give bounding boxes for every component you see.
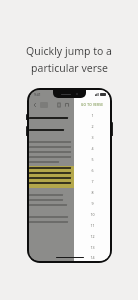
button[interactable]: 1 (74, 110, 110, 121)
staticText: 4 (91, 146, 94, 151)
button[interactable]: 14 (74, 253, 110, 261)
button[interactable]: 9 (74, 198, 110, 209)
staticText: 13 (90, 245, 95, 250)
button[interactable]: 3 (74, 132, 110, 143)
staticText: particular verse (31, 61, 108, 75)
staticText: 10 (90, 212, 95, 217)
staticText: 7 (91, 179, 94, 184)
staticText: 8 (91, 190, 94, 195)
button[interactable]: Bookmark (56, 102, 62, 108)
button[interactable]: Display settings (64, 102, 70, 108)
button[interactable]: 13 (74, 242, 110, 253)
button[interactable]: 11 (74, 220, 110, 231)
staticText: 9:41 (34, 92, 41, 97)
button[interactable]: GO TO VERSE (74, 99, 110, 110)
staticText: 12 (90, 234, 95, 239)
button[interactable]: 10 (74, 209, 110, 220)
staticText: 6 (91, 168, 94, 173)
button[interactable]: 6 (74, 165, 110, 176)
staticText: 2 (91, 124, 94, 129)
button[interactable]: 12 (74, 231, 110, 242)
staticText: 14 (90, 255, 95, 260)
staticText: GO TO VERSE (81, 103, 104, 107)
staticText: 9 (91, 201, 94, 206)
staticText: 3 (91, 135, 94, 140)
button[interactable]: 8 (74, 187, 110, 198)
button[interactable]: 4 (74, 143, 110, 154)
button[interactable]: Back (32, 102, 38, 108)
button[interactable]: 7 (74, 176, 110, 187)
staticText: 11 (90, 223, 95, 228)
staticText: 1 (91, 113, 94, 118)
button[interactable]: 2 (74, 121, 110, 132)
staticText: 5 (91, 157, 94, 162)
staticText: Quickly jump to a (26, 44, 112, 58)
button[interactable]: 5 (74, 154, 110, 165)
